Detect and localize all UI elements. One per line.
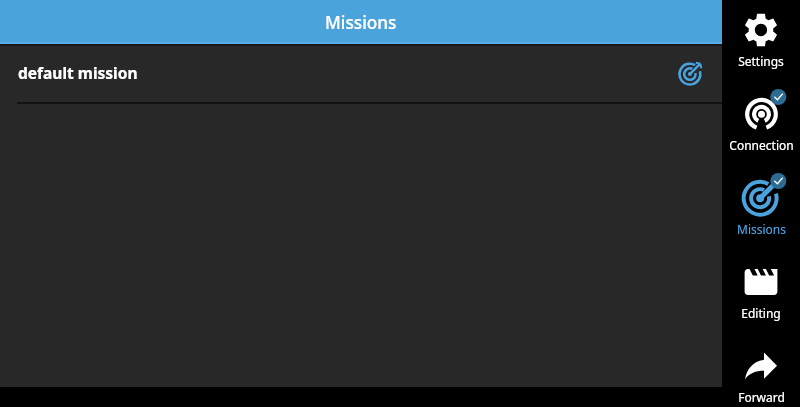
button[interactable]: default mission [0,46,722,102]
button[interactable]: Forward [722,336,800,407]
staticText: Missions [325,11,397,34]
staticText: Editing [741,305,781,321]
staticText: Forward [738,389,785,405]
staticText: default mission [18,62,138,83]
button[interactable]: Connection [722,84,800,168]
button[interactable]: Settings [722,0,800,84]
staticText: Settings [738,53,784,69]
staticText: Missions [737,221,786,237]
button[interactable]: Missions [722,168,800,252]
button[interactable]: Editing [722,252,800,336]
staticText: Connection [729,137,794,153]
